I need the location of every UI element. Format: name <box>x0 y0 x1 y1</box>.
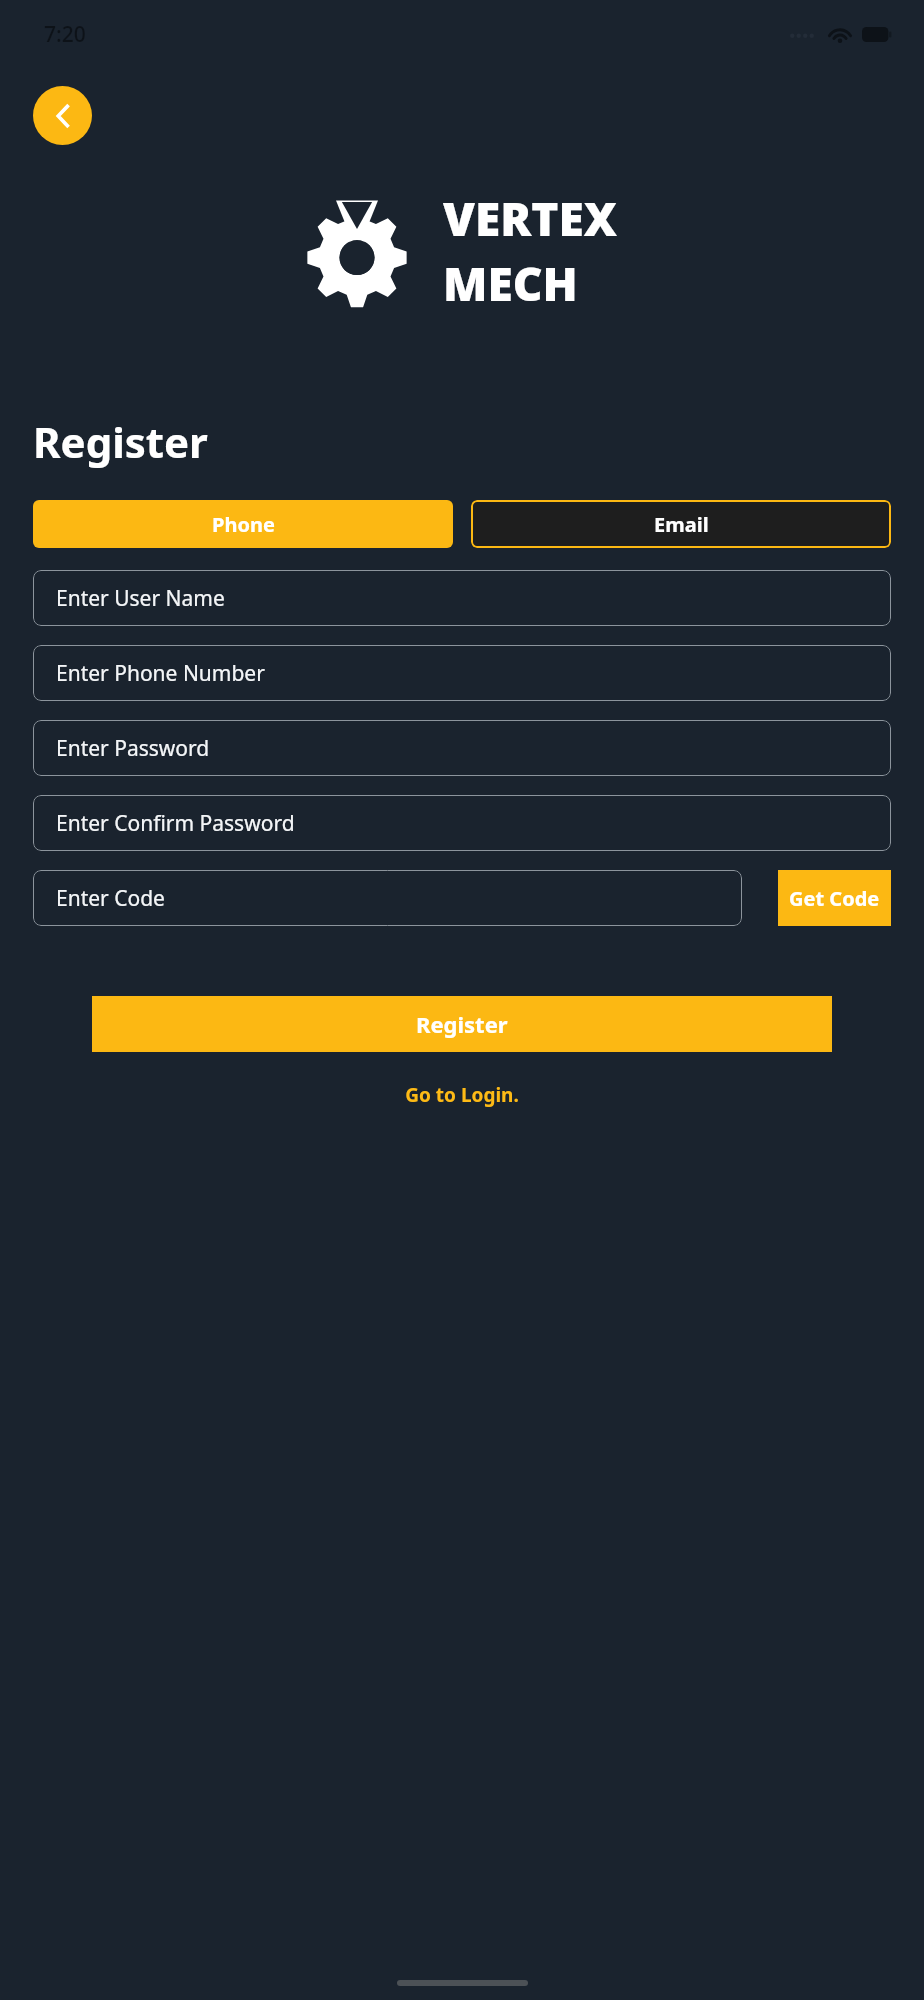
staticText: 7:20 <box>44 20 86 49</box>
button[interactable]: Phone <box>33 500 453 548</box>
button[interactable]: Go to Login. <box>397 1078 527 1112</box>
button[interactable]: Email <box>471 500 891 548</box>
button[interactable]: Enter User Name <box>33 570 891 626</box>
staticText: Email <box>654 511 709 538</box>
button[interactable]: Enter Code <box>33 870 742 926</box>
staticText: VERTEX <box>443 187 618 250</box>
button[interactable]: Enter Confirm Password <box>33 795 891 851</box>
button[interactable]: Get Code <box>778 870 891 926</box>
staticText: Register <box>416 1009 508 1039</box>
button[interactable]: Enter Password <box>33 720 891 776</box>
staticText: Register <box>33 413 208 470</box>
staticText: Enter Code <box>56 884 165 913</box>
staticText: Enter Phone Number <box>56 659 265 688</box>
button[interactable]: Register <box>92 996 832 1052</box>
staticText: Enter Confirm Password <box>56 809 295 838</box>
staticText: Enter User Name <box>56 584 225 613</box>
staticText: MECH <box>443 252 578 315</box>
staticText: Enter Password <box>56 734 210 763</box>
button[interactable]: Back <box>33 86 92 145</box>
button[interactable]: Enter Phone Number <box>33 645 891 701</box>
staticText: Go to Login. <box>405 1082 519 1108</box>
staticText: Phone <box>212 511 275 538</box>
staticText: Get Code <box>789 885 880 912</box>
